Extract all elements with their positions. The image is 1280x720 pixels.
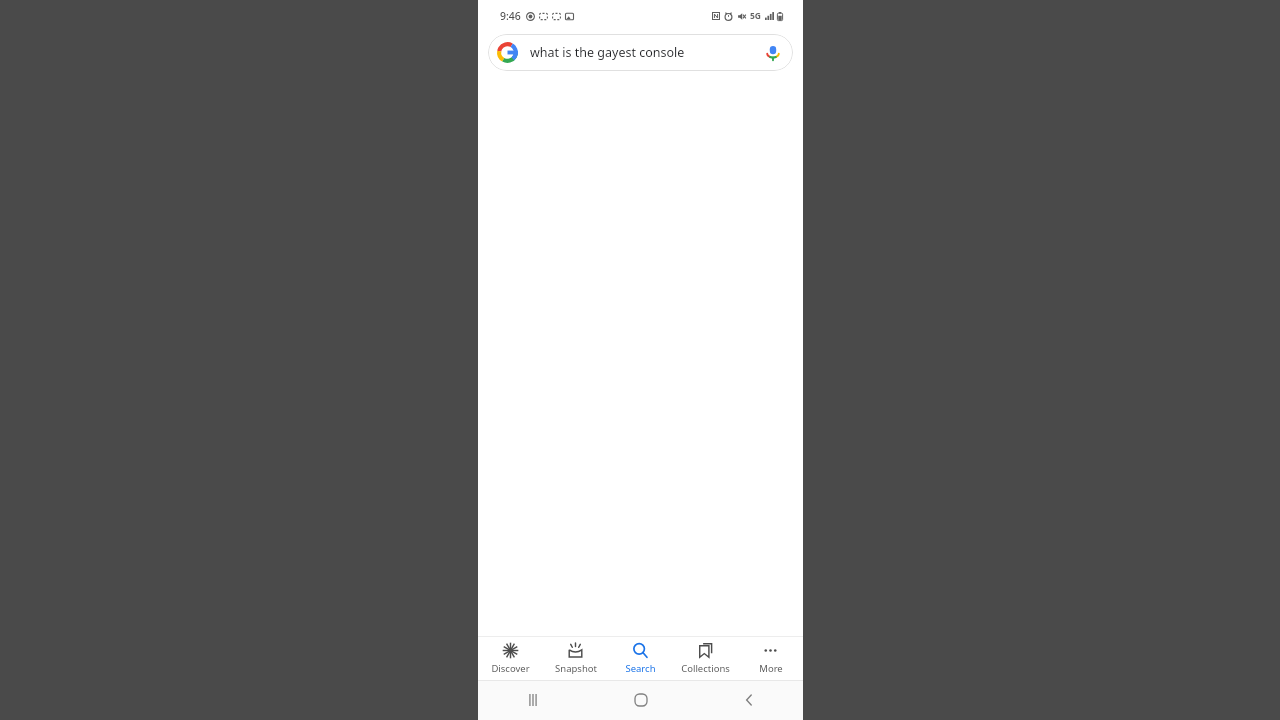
- button[interactable]: Collections: [673, 637, 738, 680]
- staticText: 5G: [750, 10, 762, 22]
- staticText: 9:46: [500, 9, 521, 23]
- button[interactable]: Discover: [478, 637, 543, 680]
- button[interactable]: what is the gayest console: [488, 34, 793, 71]
- staticText: Search: [625, 662, 656, 675]
- staticText: Snapshot: [555, 662, 597, 675]
- button[interactable]: More: [738, 637, 803, 680]
- button[interactable]: Search: [608, 637, 673, 680]
- button[interactable]: Back: [695, 680, 803, 720]
- button[interactable]: Voice search: [763, 43, 783, 63]
- button[interactable]: Home: [587, 680, 695, 720]
- staticText: Collections: [681, 662, 730, 675]
- staticText: what is the gayest console: [530, 44, 755, 61]
- staticText: Discover: [491, 662, 530, 675]
- staticText: More: [759, 662, 783, 675]
- button[interactable]: Recents: [478, 680, 587, 720]
- button[interactable]: Snapshot: [543, 637, 608, 680]
